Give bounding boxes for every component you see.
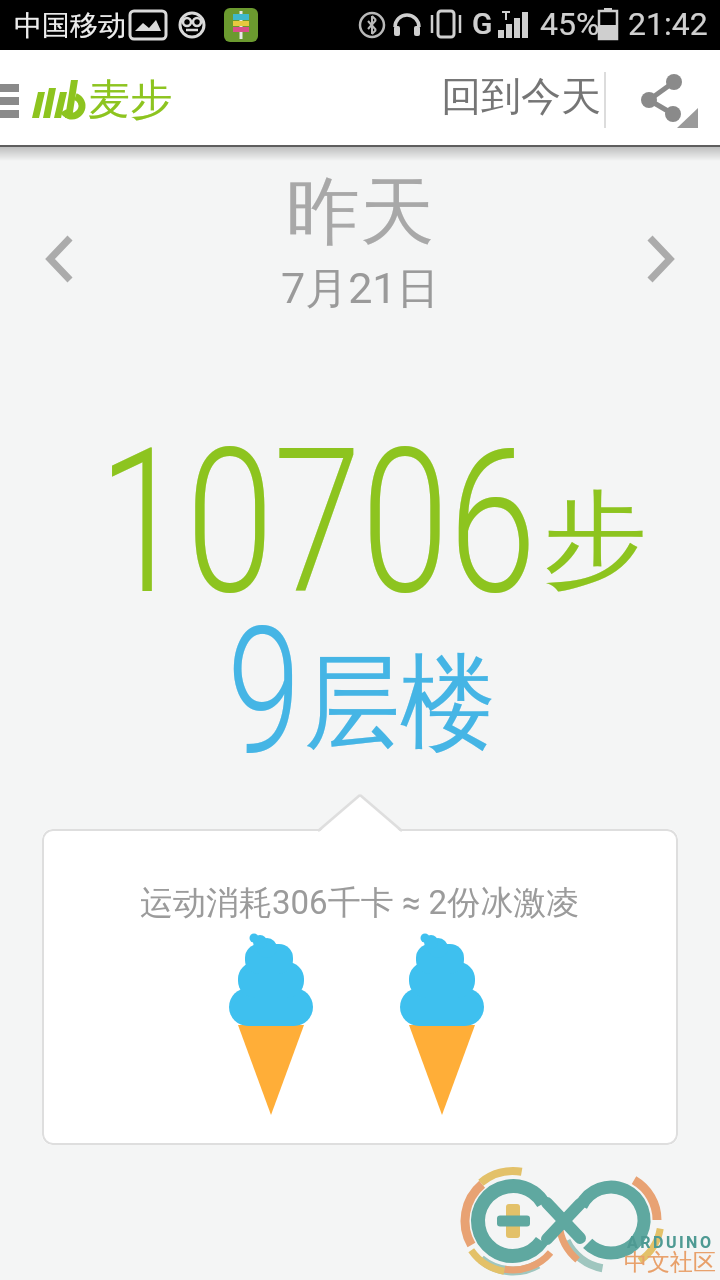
button[interactable] (44, 234, 76, 284)
staticText: 麦步 (88, 74, 172, 127)
staticText: 9 (227, 589, 301, 795)
staticText: 中国移动 (14, 8, 126, 43)
staticText: 层楼 (304, 638, 496, 769)
staticText: 运动消耗306千卡 ≈ 2份冰激凌 (140, 882, 580, 924)
button[interactable] (637, 74, 693, 130)
staticText: ARDUINO (627, 1233, 714, 1252)
staticText: 步 (543, 475, 647, 606)
staticText: 中文社区 (624, 1248, 716, 1277)
staticText: 昨天 (286, 166, 434, 259)
button[interactable] (0, 84, 20, 124)
staticText: G (472, 6, 493, 41)
button[interactable]: 回到今天 (432, 64, 602, 132)
staticText: 10706 (98, 405, 537, 639)
staticText: 21:42 (628, 5, 708, 43)
staticText: 7月21日 (281, 262, 440, 316)
staticText: 回到今天 (441, 71, 601, 121)
button[interactable] (644, 234, 676, 284)
staticText: 45% (540, 5, 600, 43)
